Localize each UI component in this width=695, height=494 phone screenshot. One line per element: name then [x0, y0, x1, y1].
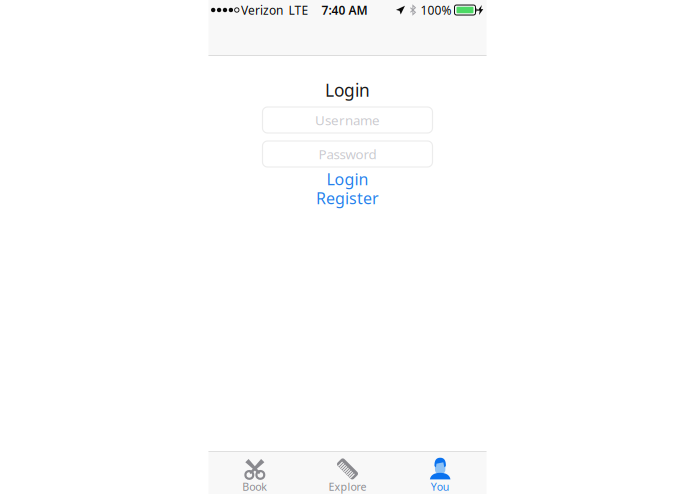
- staticText: 100%: [420, 2, 451, 18]
- staticText: Login: [325, 78, 370, 101]
- staticText: Register: [316, 187, 379, 209]
- staticText: 7:40 AM: [321, 2, 367, 18]
- staticText: LTE: [288, 2, 308, 18]
- button[interactable]: Register: [316, 189, 379, 207]
- button[interactable]: Explore: [301, 452, 394, 494]
- button[interactable]: Password: [262, 141, 432, 167]
- button[interactable]: Login: [326, 170, 368, 188]
- staticText: Login: [326, 168, 368, 190]
- staticText: Password: [318, 145, 376, 163]
- staticText: Explore: [328, 479, 366, 494]
- staticText: Username: [315, 111, 380, 129]
- staticText: Verizon: [241, 2, 283, 18]
- staticText: You: [431, 479, 450, 494]
- button[interactable]: Username: [262, 107, 432, 133]
- button[interactable]: Book: [208, 452, 301, 494]
- staticText: Book: [242, 479, 267, 494]
- button[interactable]: You: [394, 452, 486, 494]
